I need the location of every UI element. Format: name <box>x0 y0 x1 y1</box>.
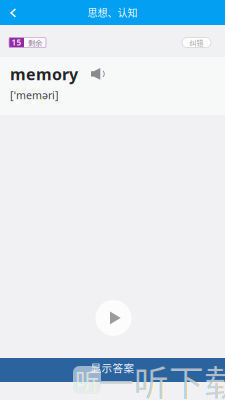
staticText: memory <box>10 63 78 85</box>
button[interactable]: Pronounce word <box>78 68 105 80</box>
staticText: 一听下载 <box>99 356 225 400</box>
button[interactable]: Back <box>0 0 25 25</box>
staticText: 15 <box>11 37 21 48</box>
staticText: 纠错 <box>189 37 203 47</box>
staticText: [ˈmeməri] <box>10 88 59 102</box>
staticText: 听 <box>75 362 99 397</box>
button[interactable]: 纠错 <box>182 37 211 47</box>
staticText: 剩余 <box>28 37 42 48</box>
button[interactable]: Play audio <box>95 300 131 336</box>
staticText: 思想、认知 <box>87 5 137 20</box>
staticText: 显示答案 <box>90 360 134 375</box>
button[interactable]: 显示答案 <box>0 358 225 382</box>
